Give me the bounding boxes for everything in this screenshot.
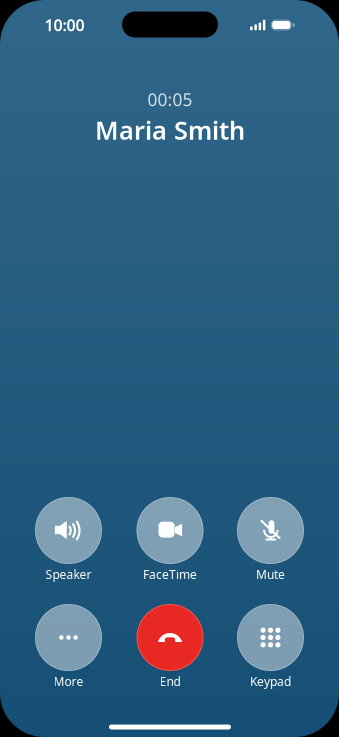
button[interactable]: More bbox=[22, 604, 114, 691]
staticText: End bbox=[159, 673, 180, 689]
staticText: 10:00 bbox=[44, 14, 84, 36]
staticText: Mute bbox=[256, 566, 285, 582]
staticText: FaceTime bbox=[143, 566, 197, 582]
staticText: Speaker bbox=[45, 566, 91, 582]
button[interactable]: End bbox=[124, 604, 216, 691]
button[interactable]: FaceTime bbox=[124, 497, 216, 584]
button[interactable]: Mute bbox=[224, 497, 316, 584]
staticText: Keypad bbox=[250, 673, 291, 689]
button[interactable]: Keypad bbox=[224, 604, 316, 691]
button[interactable]: Speaker bbox=[22, 497, 114, 584]
staticText: Maria Smith bbox=[95, 113, 245, 147]
staticText: 00:05 bbox=[147, 88, 192, 111]
staticText: More bbox=[53, 673, 83, 689]
